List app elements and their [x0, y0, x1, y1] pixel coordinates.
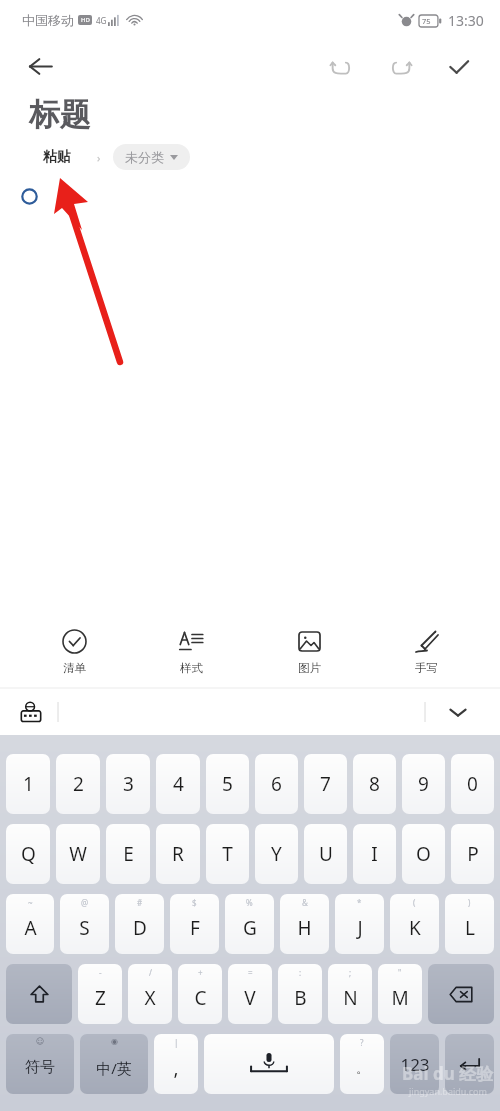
button[interactable]: Input method [14, 695, 48, 729]
button[interactable]: " [378, 964, 422, 1024]
staticText: Z [95, 985, 106, 1011]
staticText: 符号 [25, 1058, 55, 1077]
button[interactable]: 图片 [266, 623, 352, 681]
button[interactable]: # [115, 894, 164, 954]
button[interactable]: O [402, 824, 445, 884]
staticText: 。 [356, 1060, 369, 1076]
button[interactable]: - [78, 964, 122, 1024]
staticText: Y [271, 841, 282, 867]
button[interactable]: 123 [390, 1034, 439, 1094]
staticText: Q [21, 841, 36, 867]
staticText: % [246, 897, 253, 908]
staticText: 5 [222, 771, 233, 797]
button[interactable]: Delete [428, 964, 494, 1024]
button[interactable]: 粘贴 [23, 141, 90, 173]
button[interactable]: & [280, 894, 329, 954]
staticText: 9 [418, 771, 429, 797]
button[interactable]: R [156, 824, 200, 884]
staticText: HD [81, 16, 90, 24]
button[interactable]: Undo [318, 44, 364, 90]
staticText: 6 [271, 771, 282, 797]
staticText: = [248, 967, 253, 978]
button[interactable]: E [106, 824, 150, 884]
button[interactable]: Hide keyboard [438, 692, 478, 732]
button[interactable]: : [278, 964, 322, 1024]
button[interactable]: ; [328, 964, 372, 1024]
staticText: ; [349, 967, 352, 978]
staticText: 123 [400, 1053, 430, 1076]
staticText: 4G [96, 15, 107, 26]
staticText: | [174, 1037, 179, 1048]
button[interactable]: @ [60, 894, 109, 954]
staticText: 4 [173, 771, 184, 797]
staticText: T [222, 841, 233, 867]
button[interactable]: Redo [378, 44, 424, 90]
staticText: 清单 [63, 661, 86, 675]
button[interactable]: 清单 [31, 623, 117, 681]
staticText: B [294, 985, 307, 1011]
button[interactable]: Space [204, 1034, 334, 1094]
staticText: P [467, 841, 479, 867]
button[interactable]: W [56, 824, 100, 884]
button[interactable]: 8 [353, 754, 396, 814]
button[interactable]: Q [6, 824, 50, 884]
staticText: 样式 [180, 661, 203, 675]
button[interactable]: I [353, 824, 396, 884]
staticText: I [371, 841, 378, 867]
button[interactable]: ☺ [6, 1034, 74, 1094]
staticText: 0 [467, 771, 478, 797]
button[interactable]: ( [390, 894, 439, 954]
staticText: $ [192, 897, 197, 908]
button[interactable]: ◉ [80, 1034, 148, 1094]
button[interactable]: / [128, 964, 172, 1024]
staticText: " [398, 967, 402, 978]
button[interactable]: % [225, 894, 274, 954]
button[interactable]: 2 [56, 754, 100, 814]
staticText: jingyan.baidu.com [409, 1085, 487, 1097]
button[interactable]: 未分类 [113, 144, 190, 170]
button[interactable]: ) [445, 894, 494, 954]
staticText: C [194, 985, 207, 1011]
staticText: R [172, 841, 184, 867]
staticText: ( [413, 897, 416, 908]
button[interactable]: P [451, 824, 494, 884]
button[interactable]: 9 [402, 754, 445, 814]
button[interactable]: * [335, 894, 384, 954]
button[interactable]: Shift [6, 964, 72, 1024]
button[interactable]: | [154, 1034, 198, 1094]
button[interactable]: 3 [106, 754, 150, 814]
staticText: 3 [123, 771, 134, 797]
staticText: S [79, 915, 90, 941]
staticText: N [343, 985, 358, 1011]
button[interactable]: + [178, 964, 222, 1024]
button[interactable]: 0 [451, 754, 494, 814]
staticText: L [465, 915, 475, 941]
button[interactable]: 手写 [383, 623, 469, 681]
button[interactable]: 5 [206, 754, 249, 814]
staticText: U [319, 841, 333, 867]
staticText: @ [81, 897, 89, 908]
button[interactable]: Enter [445, 1034, 494, 1094]
staticText: 2 [73, 771, 84, 797]
staticText: * [357, 897, 362, 908]
button[interactable]: 样式 [148, 623, 234, 681]
staticText: M [391, 985, 409, 1011]
staticText: › [97, 150, 101, 165]
button[interactable]: Y [255, 824, 298, 884]
button[interactable]: ? [340, 1034, 384, 1094]
staticText: 7 [320, 771, 331, 797]
staticText: + [198, 967, 203, 978]
button[interactable]: Done [436, 44, 482, 90]
button[interactable]: $ [170, 894, 219, 954]
button[interactable]: 6 [255, 754, 298, 814]
button[interactable]: 7 [304, 754, 347, 814]
button[interactable]: T [206, 824, 249, 884]
button[interactable]: 1 [6, 754, 50, 814]
button[interactable]: U [304, 824, 347, 884]
staticText: W [69, 841, 87, 867]
staticText: K [409, 915, 421, 941]
button[interactable]: ~ [6, 894, 54, 954]
button[interactable]: Back [13, 40, 67, 93]
button[interactable]: 4 [156, 754, 200, 814]
button[interactable]: = [228, 964, 272, 1024]
